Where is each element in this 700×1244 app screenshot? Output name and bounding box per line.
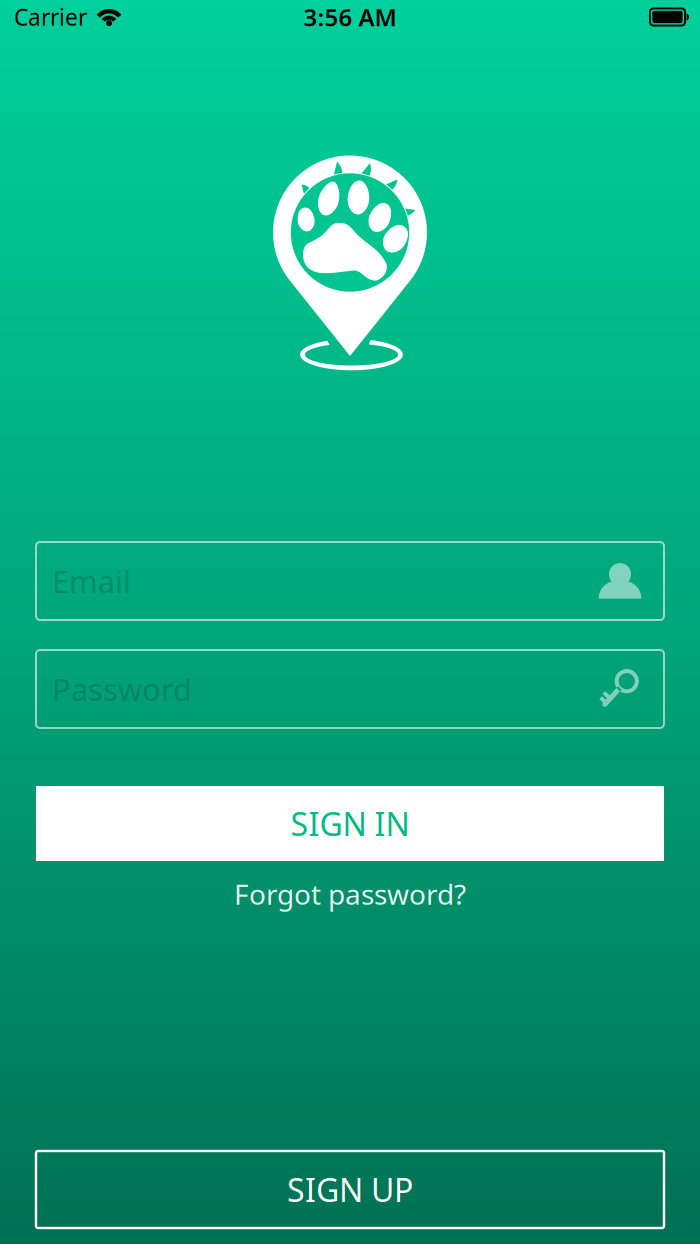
button[interactable]: SIGN IN — [0, 786, 700, 861]
button[interactable]: Forgot password? — [0, 866, 700, 922]
staticText: Carrier — [14, 2, 87, 32]
staticText: Password — [52, 669, 192, 709]
staticText: Email — [52, 561, 131, 601]
staticText: SIGN IN — [290, 802, 409, 845]
staticText: SIGN UP — [287, 1168, 413, 1211]
staticText: 3:56 AM — [303, 1, 396, 33]
staticText: Forgot password? — [234, 875, 466, 913]
button[interactable]: SIGN UP — [0, 1151, 700, 1228]
